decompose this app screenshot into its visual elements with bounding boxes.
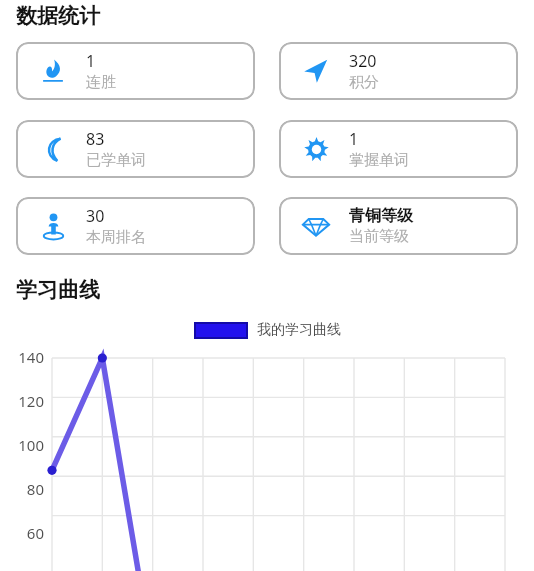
button[interactable]: 掌握单词 — [279, 120, 518, 178]
staticText: 30 — [86, 205, 105, 227]
button[interactable]: 已学单词 — [16, 120, 255, 178]
staticText: 120 — [0, 391, 44, 411]
staticText: 积分 — [349, 73, 379, 92]
staticText: 本周排名 — [86, 228, 146, 247]
staticText: 我的学习曲线 — [257, 321, 341, 339]
staticText: 60 — [0, 523, 44, 543]
staticText: 83 — [86, 128, 105, 150]
staticText: 学习曲线 — [16, 277, 100, 303]
staticText: 青铜等级 — [349, 206, 413, 226]
staticText: 320 — [349, 50, 377, 72]
staticText: 140 — [0, 347, 44, 367]
button[interactable]: 积分 — [279, 42, 518, 100]
staticText: 掌握单词 — [349, 151, 409, 170]
button[interactable]: 当前等级 — [279, 197, 518, 255]
staticText: 1 — [86, 50, 96, 72]
staticText: 80 — [0, 479, 44, 499]
staticText: 当前等级 — [349, 227, 409, 246]
staticText: 数据统计 — [16, 3, 100, 29]
staticText: 连胜 — [86, 73, 116, 92]
staticText: 1 — [349, 128, 359, 150]
button[interactable]: 本周排名 — [16, 197, 255, 255]
button[interactable]: 连胜 — [16, 42, 255, 100]
staticText: 已学单词 — [86, 151, 146, 170]
staticText: 100 — [0, 435, 44, 455]
